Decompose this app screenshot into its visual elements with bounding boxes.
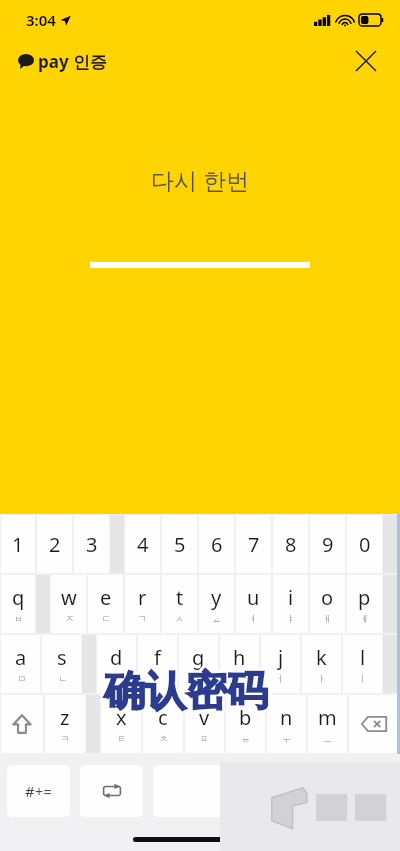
staticText: h: [233, 644, 246, 671]
staticText: ㅜ: [282, 733, 291, 744]
staticText: ㅐ: [323, 613, 332, 624]
button[interactable]: 2: [37, 515, 72, 573]
staticText: 5: [174, 531, 186, 558]
staticText: ㅋ: [61, 733, 70, 744]
button[interactable]: Shift: [1, 695, 43, 753]
staticText: space: [251, 780, 295, 802]
staticText: 确认密码: [104, 666, 268, 718]
staticText: ㅗ: [235, 673, 244, 684]
button[interactable]: p: [347, 575, 382, 633]
staticText: ㅅ: [175, 613, 184, 624]
button[interactable]: k: [302, 635, 341, 693]
staticText: ㅓ: [276, 673, 285, 684]
button[interactable]: v: [185, 695, 224, 753]
button[interactable]: 5: [162, 515, 197, 573]
button[interactable]: t: [162, 575, 197, 633]
staticText: ㅌ: [117, 733, 126, 744]
staticText: g: [192, 644, 205, 671]
staticText: n: [280, 704, 293, 731]
button[interactable]: h: [220, 635, 259, 693]
button[interactable]: a: [1, 635, 40, 693]
button[interactable]: 7: [236, 515, 271, 573]
staticText: ㅊ: [159, 733, 168, 744]
button[interactable]: o: [310, 575, 345, 633]
button[interactable]: Switch keyboard: [80, 765, 143, 817]
staticText: 确认密码: [102, 668, 266, 720]
staticText: e: [100, 584, 112, 611]
button[interactable]: g: [179, 635, 218, 693]
button[interactable]: 4: [125, 515, 160, 573]
staticText: m: [318, 704, 337, 731]
button[interactable]: l: [343, 635, 382, 693]
staticText: 6: [211, 531, 223, 558]
staticText: s: [57, 644, 67, 671]
staticText: ㄹ: [153, 673, 162, 684]
staticText: r: [138, 584, 147, 611]
button[interactable]: r: [125, 575, 160, 633]
staticText: 确认密码: [102, 666, 266, 718]
button[interactable]: d: [97, 635, 136, 693]
button[interactable]: 8: [273, 515, 308, 573]
staticText: q: [12, 584, 25, 611]
staticText: ㅍ: [200, 733, 209, 744]
button[interactable]: c: [143, 695, 183, 753]
button[interactable]: 6: [199, 515, 234, 573]
staticText: 7: [248, 531, 260, 558]
button[interactable]: y: [199, 575, 234, 633]
button[interactable]: #+=: [7, 765, 70, 817]
staticText: ㅁ: [17, 673, 26, 684]
button[interactable]: 9: [310, 515, 345, 573]
staticText: 确认密码: [104, 668, 268, 720]
staticText: z: [60, 704, 70, 731]
button[interactable]: 0: [347, 515, 382, 573]
staticText: t: [176, 584, 184, 611]
button[interactable]: w: [51, 575, 86, 633]
staticText: 3: [86, 531, 98, 558]
staticText: 确认密码: [104, 664, 268, 716]
staticText: ㄱ: [138, 613, 147, 624]
button[interactable]: Backspace: [349, 695, 399, 753]
button[interactable]: b: [226, 695, 265, 753]
staticText: 2: [49, 531, 61, 558]
button[interactable]: 1: [1, 515, 35, 573]
staticText: ㅠ: [241, 733, 250, 744]
staticText: 다시 한번: [151, 164, 249, 195]
staticText: 确认密码: [106, 668, 270, 720]
staticText: y: [211, 584, 222, 611]
button[interactable]: x: [101, 695, 141, 753]
staticText: k: [316, 644, 327, 671]
button[interactable]: e: [88, 575, 123, 633]
staticText: ㅇ: [112, 673, 121, 684]
staticText: u: [247, 584, 260, 611]
button[interactable]: n: [267, 695, 306, 753]
button[interactable]: q: [1, 575, 35, 633]
staticText: ㅎ: [194, 673, 203, 684]
staticText: l: [360, 644, 366, 671]
staticText: ㅛ: [212, 613, 221, 624]
button[interactable]: Close: [346, 41, 386, 81]
staticText: p: [358, 584, 371, 611]
staticText: i: [288, 584, 294, 611]
button[interactable]: s: [42, 635, 81, 693]
staticText: ㄴ: [58, 673, 67, 684]
staticText: ㄷ: [102, 613, 111, 624]
staticText: ㅏ: [317, 673, 326, 684]
button[interactable]: i: [273, 575, 308, 633]
button[interactable]: m: [308, 695, 347, 753]
button[interactable]: z: [45, 695, 85, 753]
button[interactable]: j: [261, 635, 300, 693]
staticText: 确认密码: [106, 664, 270, 716]
staticText: ㅂ: [14, 613, 23, 624]
staticText: 9: [322, 531, 334, 558]
staticText: 4: [137, 531, 149, 558]
button[interactable]: 3: [74, 515, 109, 573]
button[interactable]: f: [138, 635, 177, 693]
button[interactable]: space: [153, 765, 393, 817]
staticText: ㅑ: [286, 613, 295, 624]
staticText: ㅡ: [323, 733, 332, 744]
staticText: 1: [12, 531, 24, 558]
button[interactable]: u: [236, 575, 271, 633]
staticText: w: [61, 584, 77, 611]
staticText: 0: [359, 531, 371, 558]
staticText: ㅈ: [65, 613, 74, 624]
